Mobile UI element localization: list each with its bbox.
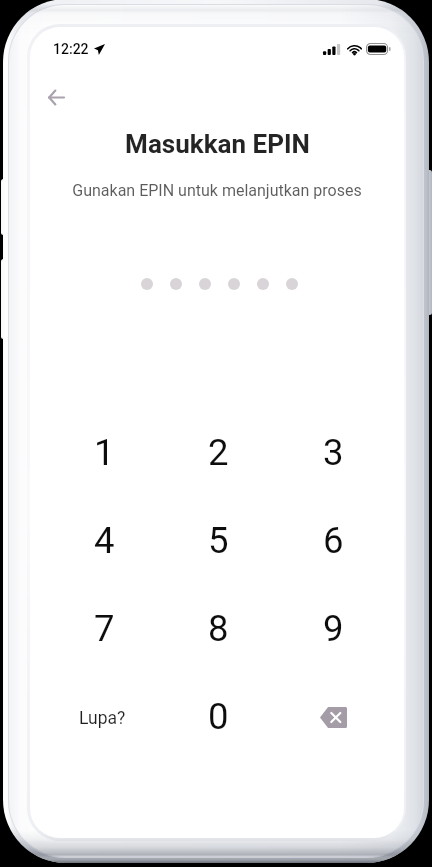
- button[interactable]: 7: [47, 584, 161, 672]
- button[interactable]: 4: [47, 496, 161, 584]
- staticText: 5: [208, 519, 229, 562]
- button[interactable]: 1: [47, 408, 161, 496]
- staticText: 3: [323, 431, 344, 474]
- staticText: 9: [323, 607, 344, 650]
- staticText: 6: [323, 519, 344, 562]
- button[interactable]: Lupa?: [47, 672, 161, 760]
- button[interactable]: 9: [276, 584, 391, 672]
- staticText: 0: [208, 695, 229, 738]
- staticText: 12:22: [53, 41, 89, 57]
- button[interactable]: Backspace: [276, 672, 391, 760]
- staticText: 7: [94, 607, 115, 650]
- staticText: Gunakan EPIN untuk melanjutkan proses: [72, 181, 362, 200]
- staticText: 2: [208, 431, 229, 474]
- button[interactable]: 5: [161, 496, 276, 584]
- staticText: 1: [94, 431, 115, 474]
- staticText: Lupa?: [79, 708, 126, 729]
- staticText: Masukkan EPIN: [125, 129, 310, 159]
- button[interactable]: 0: [161, 672, 276, 760]
- staticText: 4: [94, 519, 115, 562]
- staticText: 8: [208, 607, 229, 650]
- button[interactable]: 8: [161, 584, 276, 672]
- button[interactable]: Back: [34, 75, 78, 119]
- other: Backspace: [320, 707, 347, 728]
- button[interactable]: 2: [161, 408, 276, 496]
- button[interactable]: 3: [276, 408, 391, 496]
- button[interactable]: 6: [276, 496, 391, 584]
